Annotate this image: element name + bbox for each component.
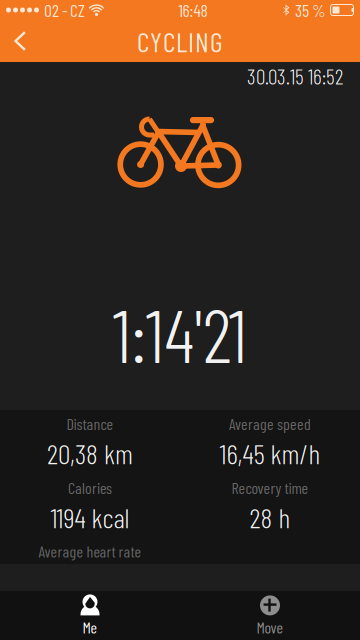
staticText: Calories bbox=[68, 478, 112, 497]
button[interactable]: Back bbox=[0, 20, 40, 62]
staticText: 20,38 km bbox=[47, 436, 133, 470]
staticText: Recovery time bbox=[231, 478, 308, 497]
staticText: 35 % bbox=[295, 0, 326, 20]
button[interactable]: Me bbox=[0, 591, 180, 640]
staticText: 16,45 km/h bbox=[219, 436, 320, 470]
staticText: CYCLING bbox=[137, 24, 223, 58]
staticText: 16:48 bbox=[178, 0, 207, 20]
staticText: 1194 kcal bbox=[50, 500, 129, 534]
staticText: 30.03.15 16:52 bbox=[247, 63, 343, 89]
staticText: Average heart rate bbox=[38, 541, 141, 561]
button[interactable]: Move bbox=[180, 591, 360, 640]
staticText: Move bbox=[256, 617, 283, 637]
staticText: Me bbox=[82, 617, 97, 637]
staticText: Average speed bbox=[229, 414, 311, 433]
staticText: 1:14'21 bbox=[112, 288, 247, 378]
staticText: 28 h bbox=[249, 500, 290, 534]
staticText: O2 - CZ bbox=[44, 0, 85, 20]
staticText: Distance bbox=[66, 414, 113, 433]
